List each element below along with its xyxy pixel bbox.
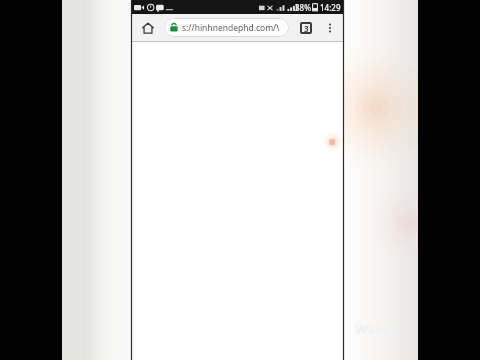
button[interactable]: More options (318, 16, 342, 40)
button[interactable]: s://hinhnendephd.com/\ (164, 18, 289, 37)
staticText: 38% (295, 2, 311, 13)
button[interactable]: Open tabs: 3 (294, 16, 318, 40)
staticText: s://hinhnendephd.com/\ (182, 22, 280, 34)
staticText: 14:29 (320, 2, 341, 13)
button[interactable]: Home (135, 15, 161, 41)
staticText: Watch (355, 320, 396, 338)
staticText: 3 (304, 23, 309, 34)
